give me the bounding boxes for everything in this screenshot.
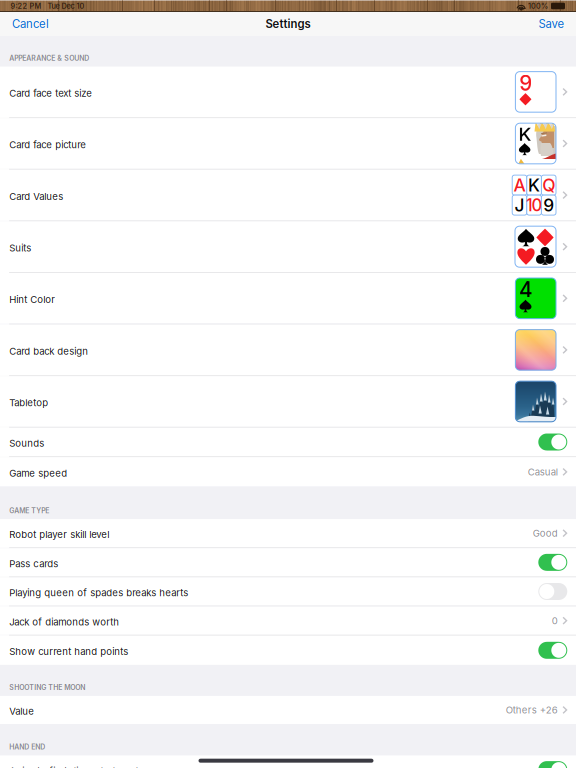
button[interactable]: Card Values (0, 170, 576, 220)
staticText: Suits (9, 242, 31, 254)
staticText: Game speed (9, 467, 67, 479)
staticText: Value (9, 705, 34, 717)
staticText: Save (538, 17, 564, 31)
staticText: Card back design (9, 345, 88, 357)
staticText: 4 (519, 277, 533, 302)
staticText: 1 (526, 195, 533, 215)
button[interactable]: Playing queen of spades breaks hearts (0, 577, 576, 606)
button[interactable]: Pass cards (0, 548, 576, 576)
button[interactable]: Jack of diamonds worth (0, 607, 576, 635)
staticText: 9:22 PM (10, 2, 41, 10)
staticText: K (518, 123, 531, 145)
staticText: J (514, 195, 524, 216)
staticText: Cancel (12, 17, 49, 31)
button[interactable]: Game speed (0, 457, 576, 487)
staticText: 0 (552, 615, 558, 626)
staticText: Good (533, 527, 558, 539)
staticText: HAND END (9, 743, 45, 751)
button[interactable]: Card back design (0, 325, 576, 375)
staticText: Casual (528, 466, 558, 478)
staticText: Tabletop (9, 397, 48, 409)
button[interactable]: Hint Color (0, 273, 576, 324)
staticText: Hint Color (9, 294, 55, 305)
button[interactable]: Cancel (0, 11, 59, 37)
staticText: 9 (543, 195, 554, 216)
staticText: Animate first discarded card (9, 765, 138, 768)
staticText: Card face text size (9, 87, 92, 99)
staticText: SHOOTING THE MOON (9, 683, 85, 692)
staticText: GAME TYPE (9, 506, 49, 515)
staticText: Others +26 (506, 704, 558, 716)
button[interactable]: Card face text size (0, 67, 576, 117)
staticText: 9 (519, 71, 532, 96)
staticText: Q (542, 175, 555, 196)
staticText: Playing queen of spades breaks hearts (9, 587, 188, 599)
staticText: Settings (265, 17, 310, 31)
button[interactable]: Tabletop (0, 376, 576, 427)
staticText: APPEARANCE & SOUND (9, 54, 89, 62)
staticText: 0 (531, 195, 542, 215)
staticText: Jack of diamonds worth (9, 616, 119, 628)
button[interactable]: Suits (0, 221, 576, 272)
staticText: A (513, 175, 525, 196)
staticText: K (528, 175, 540, 196)
button[interactable]: Card face picture (0, 118, 576, 169)
staticText: Card Values (9, 191, 63, 202)
button[interactable]: Save (528, 11, 576, 37)
button[interactable]: Robot player skill level (0, 519, 576, 547)
staticText: Sounds (9, 437, 44, 449)
button[interactable]: Animate first discarded card (0, 755, 576, 768)
button[interactable]: Sounds (0, 428, 576, 456)
button[interactable]: Show current hand points (0, 636, 576, 665)
staticText: Tue Dec 10 (41, 2, 84, 10)
staticText: Pass cards (9, 558, 58, 569)
staticText: Show current hand points (9, 646, 128, 657)
button[interactable]: Value (0, 696, 576, 724)
staticText: 100% (526, 2, 548, 10)
staticText: Robot player skill level (9, 529, 109, 540)
staticText: Card face picture (9, 139, 86, 151)
